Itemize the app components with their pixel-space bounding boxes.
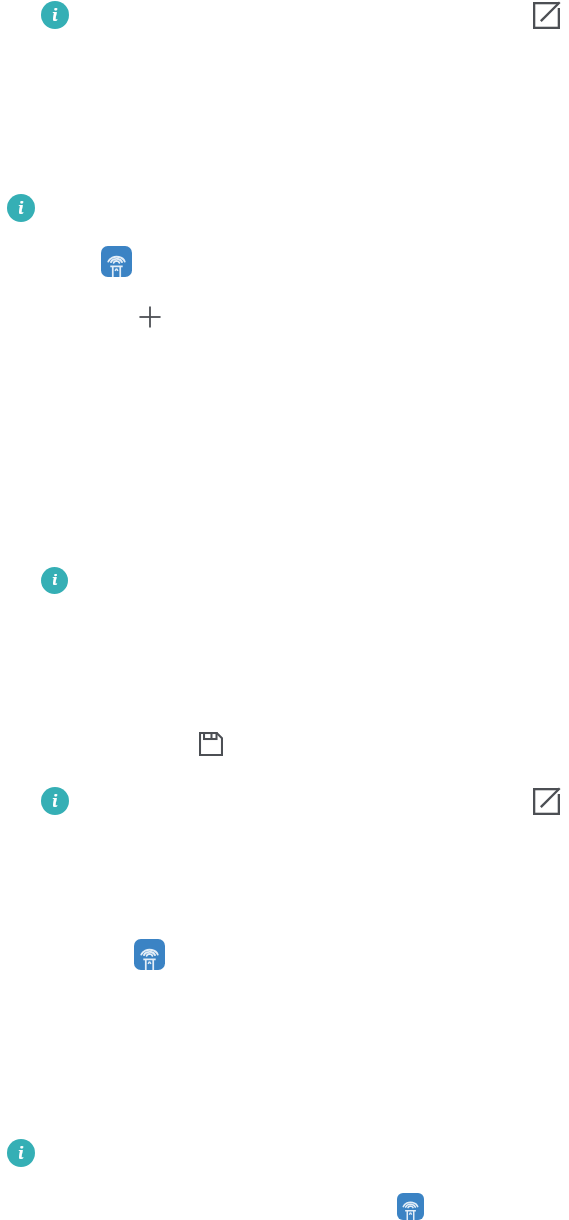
button[interactable]: Open in new window	[533, 2, 560, 29]
staticText: i	[52, 569, 58, 590]
button[interactable]: Add	[138, 305, 162, 329]
staticText: i	[18, 1142, 24, 1163]
button[interactable]: Wi-Fi router	[134, 939, 165, 970]
button[interactable]: Open in new window	[533, 788, 560, 815]
button[interactable]: More information	[7, 194, 35, 222]
button[interactable]: More information	[41, 787, 69, 815]
button[interactable]: Save	[199, 732, 223, 756]
staticText: i	[52, 4, 58, 25]
button[interactable]: Wi-Fi router	[101, 246, 132, 277]
button[interactable]: More information	[41, 567, 68, 594]
staticText: i	[52, 790, 58, 811]
button[interactable]: More information	[7, 1139, 35, 1167]
button[interactable]: More information	[41, 1, 69, 29]
button[interactable]: Wi-Fi router	[397, 1193, 424, 1220]
staticText: i	[18, 197, 24, 218]
